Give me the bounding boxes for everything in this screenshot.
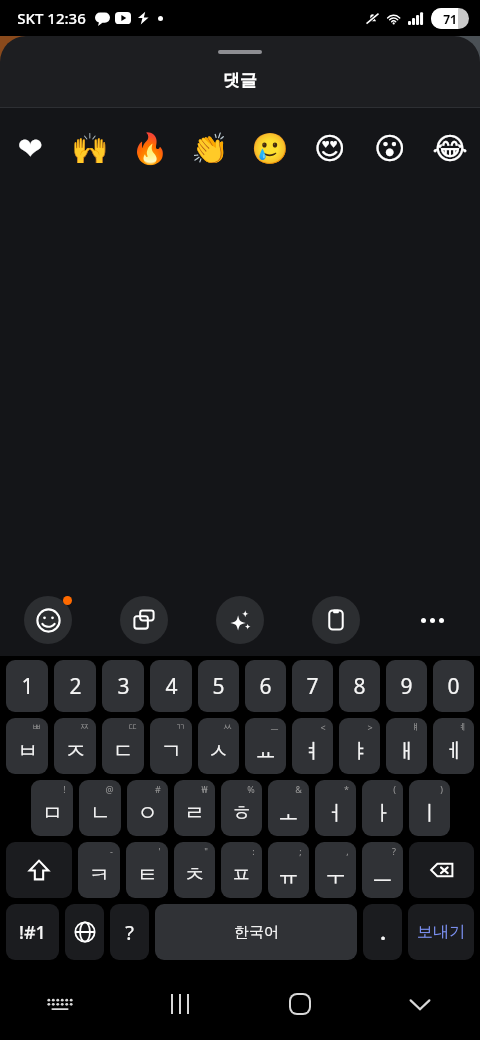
button[interactable]: 8	[339, 660, 380, 712]
staticText: 7	[306, 672, 319, 701]
button[interactable]: Change language	[65, 904, 104, 960]
button[interactable]: 7	[292, 660, 333, 712]
button[interactable]: 2	[54, 660, 96, 712]
button[interactable]: More options	[384, 584, 480, 656]
staticText: ?	[125, 919, 134, 946]
staticText: ㅑ	[349, 738, 370, 764]
button[interactable]: AI suggestions	[216, 596, 264, 644]
staticText: ㄱ	[161, 738, 182, 764]
button[interactable]: Clipboard	[312, 596, 360, 644]
button[interactable]: ?	[362, 842, 403, 898]
staticText: ㅍ	[231, 862, 252, 888]
button[interactable]: ;	[268, 842, 309, 898]
button[interactable]: 5	[198, 660, 239, 712]
staticText: ㅗ	[278, 800, 299, 826]
staticText: ❤️	[17, 131, 43, 166]
staticText: ,	[346, 845, 349, 857]
button[interactable]: 9	[386, 660, 427, 712]
staticText: 댓글	[223, 70, 257, 91]
button[interactable]: )	[409, 780, 450, 836]
staticText: 🔥	[131, 131, 169, 166]
staticText: 5	[212, 672, 225, 701]
staticText: ㄴ	[90, 800, 111, 826]
button[interactable]: 0	[433, 660, 474, 712]
staticText: ;	[299, 845, 302, 857]
button[interactable]: ㅖ	[433, 718, 474, 774]
button[interactable]: 3	[102, 660, 144, 712]
button[interactable]: :	[221, 842, 262, 898]
staticText: @	[105, 783, 114, 795]
button[interactable]: *	[315, 780, 356, 836]
button[interactable]: ㅃ	[6, 718, 48, 774]
button[interactable]: Keyboard	[0, 968, 120, 1040]
button[interactable]: Recent apps	[120, 968, 240, 1040]
button[interactable]: %	[221, 780, 262, 836]
button[interactable]: <	[292, 718, 333, 774]
button[interactable]: ㄸ	[102, 718, 144, 774]
staticText: ㄷ	[113, 738, 134, 764]
button[interactable]: Emoji	[24, 596, 72, 644]
staticText: !	[63, 783, 66, 795]
button[interactable]: ㄲ	[150, 718, 192, 774]
staticText: 🥲	[251, 131, 289, 166]
button[interactable]: ㅆ	[198, 718, 239, 774]
staticText: ㄲ	[176, 721, 185, 732]
button[interactable]: ,	[315, 842, 356, 898]
staticText: :	[252, 845, 255, 857]
button[interactable]: Home	[240, 968, 360, 1040]
button[interactable]: (	[362, 780, 403, 836]
staticText: ㅔ	[443, 738, 464, 764]
staticText: &	[295, 783, 302, 795]
button[interactable]: !	[31, 780, 73, 836]
button[interactable]: &	[268, 780, 309, 836]
staticText: ㅛ	[255, 738, 276, 764]
button[interactable]: !#1	[6, 904, 59, 960]
button[interactable]: 4	[150, 660, 192, 712]
button[interactable]: 한국어	[155, 904, 357, 960]
staticText: 1	[21, 672, 34, 701]
button[interactable]: ?	[110, 904, 149, 960]
staticText: ㅆ	[223, 721, 232, 732]
staticText: )	[440, 783, 443, 795]
button[interactable]: 🥲	[240, 108, 300, 188]
button[interactable]: ㅉ	[54, 718, 96, 774]
button[interactable]: .	[363, 904, 402, 960]
button[interactable]: ❤️	[0, 108, 60, 188]
staticText: "	[204, 845, 208, 857]
button[interactable]: 😍	[300, 108, 360, 188]
button[interactable]: ㅡ	[245, 718, 286, 774]
button[interactable]: Shift	[6, 842, 72, 898]
staticText: 3	[117, 672, 130, 701]
button[interactable]: "	[174, 842, 215, 898]
staticText: %	[247, 783, 255, 795]
button[interactable]: ₩	[174, 780, 215, 836]
button[interactable]: 👏	[180, 108, 240, 188]
button[interactable]: Translate	[120, 596, 168, 644]
staticText: (	[393, 783, 396, 795]
staticText: ㅊ	[184, 862, 205, 888]
staticText: ㅅ	[208, 738, 229, 764]
staticText: 9	[400, 672, 413, 701]
button[interactable]: 🙌	[60, 108, 120, 188]
button[interactable]: 😮	[360, 108, 420, 188]
staticText: ㅒ	[411, 721, 420, 732]
button[interactable]: 🔥	[120, 108, 180, 188]
button[interactable]: Backspace	[409, 842, 474, 898]
button[interactable]: #	[127, 780, 168, 836]
staticText: 6	[259, 672, 272, 701]
button[interactable]: ㅒ	[386, 718, 427, 774]
button[interactable]: @	[79, 780, 121, 836]
button[interactable]: Hide keyboard	[360, 968, 480, 1040]
staticText: ㅡ	[270, 721, 279, 732]
staticText: 71	[443, 11, 457, 27]
button[interactable]: 보내기	[408, 904, 474, 960]
staticText: 0	[447, 672, 460, 701]
button[interactable]: 6	[245, 660, 286, 712]
button[interactable]: -	[78, 842, 120, 898]
button[interactable]: 😂	[420, 108, 480, 188]
button[interactable]: '	[126, 842, 168, 898]
staticText: ㅖ	[458, 721, 467, 732]
button[interactable]: 1	[6, 660, 48, 712]
staticText: ㅣ	[419, 800, 440, 826]
button[interactable]: >	[339, 718, 380, 774]
